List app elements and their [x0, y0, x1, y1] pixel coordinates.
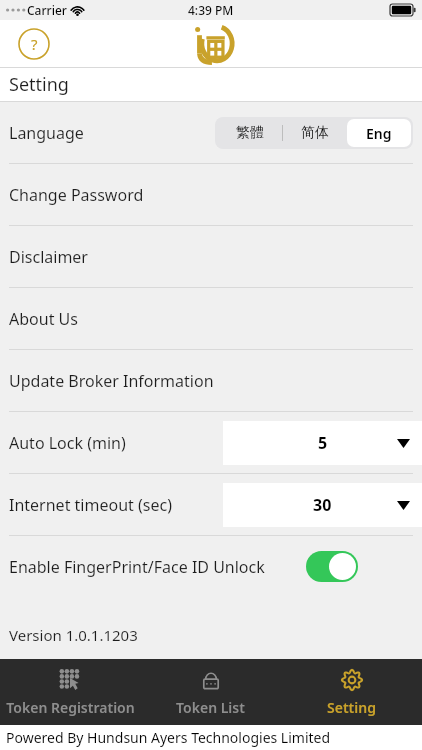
- staticText: About Us: [9, 308, 78, 330]
- staticText: Version 1.0.1.1203: [9, 625, 138, 645]
- staticText: Setting: [9, 72, 69, 97]
- staticText: 简体: [301, 124, 329, 142]
- button[interactable]: Setting: [281, 659, 422, 725]
- button[interactable]: Change Password: [0, 164, 422, 225]
- button[interactable]: Eng: [347, 119, 411, 147]
- staticText: Auto Lock (min): [9, 432, 126, 454]
- staticText: Language: [9, 122, 84, 144]
- staticText: Token List: [176, 698, 245, 717]
- button[interactable]: Token List: [140, 659, 281, 725]
- button[interactable]: Disclaimer: [0, 226, 422, 287]
- staticText: Eng: [366, 124, 392, 143]
- button[interactable]: Help: [18, 28, 50, 60]
- staticText: 30: [313, 494, 332, 516]
- staticText: Token Registration: [6, 698, 135, 717]
- button[interactable]: Update Broker Information: [0, 350, 422, 411]
- staticText: 繁體: [236, 124, 264, 142]
- staticText: Update Broker Information: [9, 370, 214, 392]
- staticText: Carrier: [27, 2, 67, 18]
- staticText: Powered By Hundsun Ayers Technologies Li…: [6, 728, 331, 747]
- button[interactable]: 30: [223, 483, 422, 527]
- staticText: Setting: [327, 698, 376, 717]
- button[interactable]: Token Registration: [0, 659, 140, 725]
- staticText: ?: [31, 34, 38, 54]
- button[interactable]: About Us: [0, 288, 422, 349]
- staticText: Enable FingerPrint/Face ID Unlock: [9, 556, 265, 578]
- staticText: 5: [318, 432, 328, 454]
- staticText: Change Password: [9, 184, 144, 206]
- staticText: Disclaimer: [9, 246, 88, 268]
- staticText: Internet timeout (sec): [9, 494, 172, 516]
- button[interactable]: 简体: [283, 119, 347, 147]
- button[interactable]: 繁體: [217, 119, 282, 147]
- button[interactable]: 5: [223, 421, 422, 465]
- button[interactable]: Enable FingerPrint/Face ID Unlock: [9, 536, 413, 597]
- staticText: 4:39 PM: [188, 2, 234, 18]
